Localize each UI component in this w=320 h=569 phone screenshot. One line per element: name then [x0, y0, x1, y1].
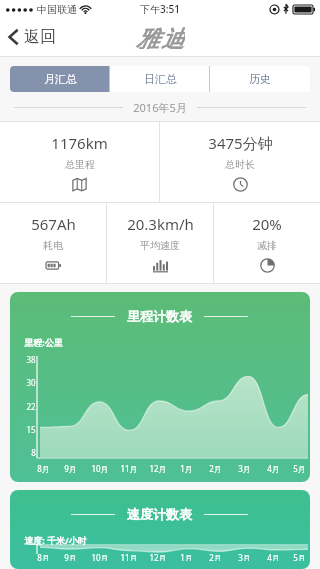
staticText: 1月 [180, 552, 193, 561]
staticText: 11月 [120, 552, 138, 561]
button[interactable]: 月汇总 [10, 66, 110, 92]
staticText: 12月 [149, 552, 167, 561]
button[interactable]: 20.3km/h [107, 203, 213, 283]
staticText: 9月 [64, 463, 77, 474]
staticText: 总里程 [65, 158, 95, 171]
staticText: 返回 [24, 27, 56, 47]
button[interactable]: 速度计数表 [10, 490, 310, 569]
staticText: 11月 [120, 463, 138, 474]
button[interactable]: 历史 [210, 66, 310, 92]
staticText: 1176km [51, 133, 108, 153]
staticText: 20.3km/h [127, 214, 194, 234]
staticText: 日汇总 [144, 72, 177, 86]
staticText: 3475分钟 [208, 133, 273, 153]
button[interactable]: 1176km [0, 122, 159, 202]
button[interactable]: 返回 [0, 18, 66, 56]
staticText: 3月 [238, 463, 251, 474]
staticText: 2016年5月 [133, 100, 187, 115]
staticText: 8月 [37, 552, 50, 561]
staticText: 里程计数表 [127, 308, 192, 324]
staticText: 耗电 [43, 239, 63, 252]
staticText: 10月 [91, 552, 109, 561]
button[interactable]: 20% [214, 203, 320, 283]
button[interactable]: 3475分钟 [160, 122, 320, 202]
staticText: 15 [26, 424, 36, 435]
button[interactable]: 567Ah [0, 203, 106, 283]
staticText: 10月 [91, 463, 109, 474]
staticText: 月汇总 [44, 72, 77, 86]
staticText: 里程:公里 [24, 336, 63, 348]
staticText: 567Ah [31, 214, 76, 234]
staticText: 4月 [267, 463, 280, 474]
staticText: 雅迪 [135, 25, 185, 49]
staticText: 1月 [180, 463, 193, 474]
staticText: 4月 [267, 552, 280, 561]
staticText: 2月 [209, 463, 222, 474]
staticText: 8 [31, 447, 36, 458]
staticText: 历史 [249, 72, 271, 86]
button[interactable]: 日汇总 [110, 66, 210, 92]
staticText: 3月 [238, 552, 251, 561]
staticText: 减排 [257, 239, 277, 252]
staticText: 中国联通 [37, 3, 77, 16]
staticText: 速度: 千米/小时 [24, 534, 87, 546]
staticText: 下午3:51 [140, 2, 180, 16]
staticText: 5月 [293, 552, 306, 561]
staticText: 12月 [149, 463, 167, 474]
staticText: 8月 [37, 463, 50, 474]
staticText: 速度计数表 [127, 506, 192, 522]
staticText: 30 [26, 377, 36, 388]
staticText: 38 [26, 354, 36, 365]
button[interactable]: 里程计数表 [10, 292, 310, 482]
staticText: 9月 [64, 552, 77, 561]
staticText: 20% [252, 214, 282, 234]
staticText: 总时长 [225, 158, 255, 171]
staticText: 平均速度 [140, 239, 180, 252]
staticText: 2月 [209, 552, 222, 561]
staticText: 22 [26, 401, 36, 412]
staticText: 5月 [293, 463, 306, 474]
